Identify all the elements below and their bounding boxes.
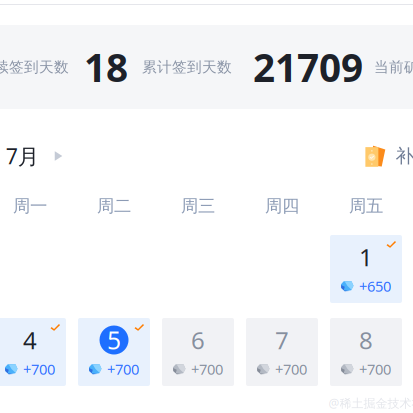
staticText: 21709 — [253, 41, 363, 93]
staticText: 周五 — [349, 195, 383, 217]
button[interactable]: 7 — [246, 318, 318, 386]
staticText: 周二 — [97, 195, 131, 217]
button[interactable]: 1 — [330, 235, 402, 303]
staticText: 5 — [107, 323, 121, 357]
staticText: 补签 — [395, 144, 413, 168]
staticText: 7 — [275, 324, 289, 356]
staticText: +700 — [23, 359, 55, 379]
staticText: +700 — [275, 359, 307, 379]
staticText: 周四 — [265, 195, 299, 217]
staticText: +650 — [359, 276, 391, 296]
staticText: 连续签到天数 — [0, 58, 69, 76]
staticText: 7月 — [6, 141, 39, 171]
staticText: 累计签到天数 — [142, 58, 232, 76]
staticText: 当前矿 — [374, 58, 413, 76]
staticText: 8 — [359, 324, 373, 356]
button[interactable]: 5 — [78, 318, 150, 386]
button[interactable]: 4 — [0, 318, 66, 386]
staticText: 1 — [359, 241, 373, 273]
staticText: 周一 — [13, 195, 47, 217]
button[interactable]: 补签 — [362, 144, 413, 168]
staticText: +700 — [359, 359, 391, 379]
staticText: 4 — [23, 324, 37, 356]
staticText: 6 — [191, 324, 205, 356]
staticText: 18 — [84, 41, 128, 93]
staticText: 周三 — [181, 195, 215, 217]
staticText: +700 — [191, 359, 223, 379]
button[interactable]: 8 — [330, 318, 402, 386]
staticText: +700 — [107, 359, 139, 379]
staticText: @稀土掘金技术社区 — [328, 395, 413, 411]
button[interactable]: 6 — [162, 318, 234, 386]
button[interactable]: 7月 — [6, 141, 62, 171]
